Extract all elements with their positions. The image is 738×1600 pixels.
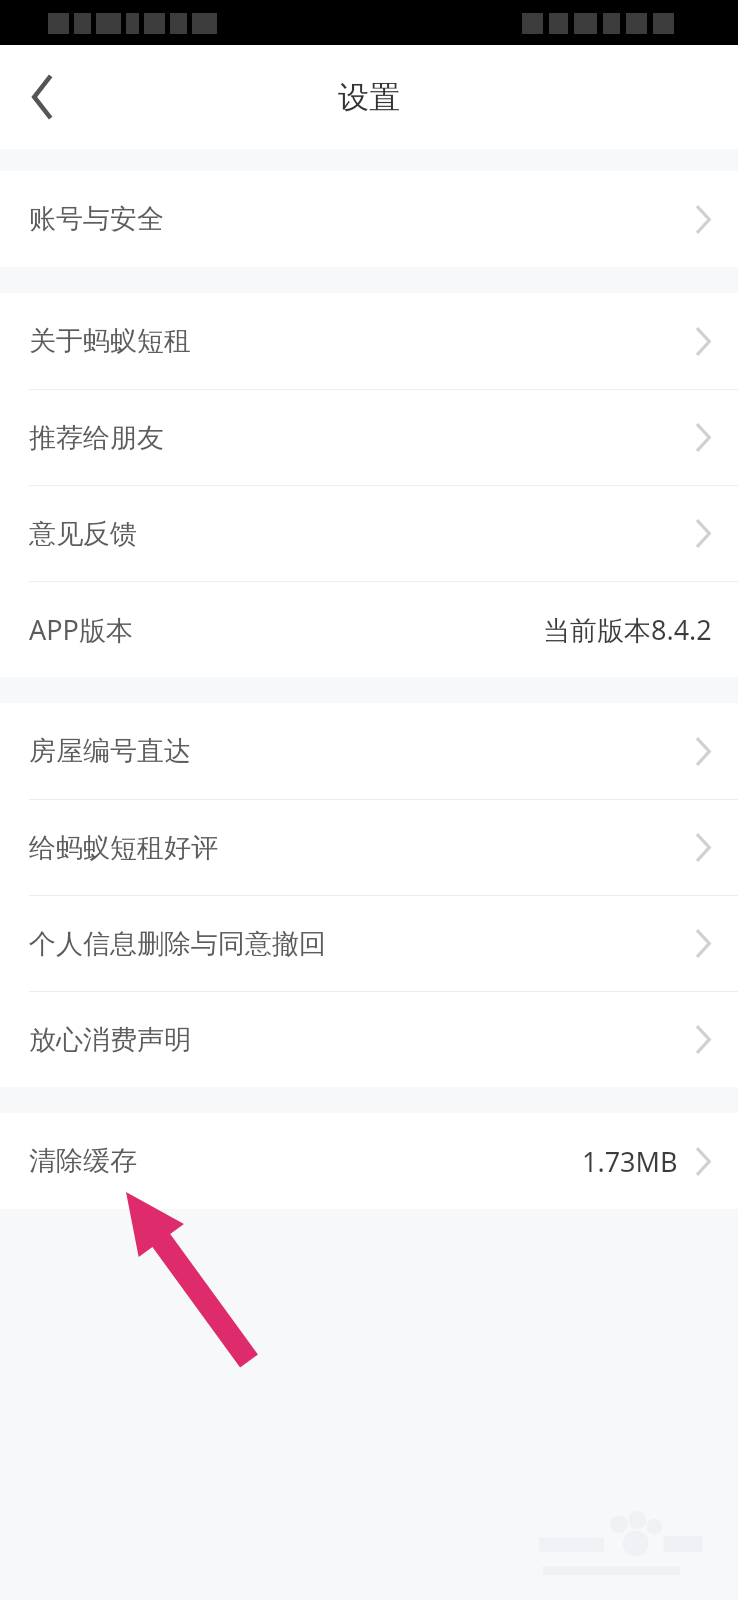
staticText: 账号与安全: [29, 202, 164, 236]
staticText: 个人信息删除与同意撤回: [29, 927, 326, 961]
staticText: 关于蚂蚁短租: [29, 324, 191, 358]
button[interactable]: 给蚂蚁短租好评: [0, 800, 738, 895]
staticText: 意见反馈: [29, 517, 137, 551]
staticText: 推荐给朋友: [29, 421, 164, 455]
button[interactable]: 房屋编号直达: [0, 703, 738, 799]
button[interactable]: APP版本: [0, 582, 738, 677]
button[interactable]: 放心消费声明: [0, 992, 738, 1087]
button[interactable]: 意见反馈: [0, 486, 738, 581]
staticText: 放心消费声明: [29, 1023, 191, 1057]
button[interactable]: 推荐给朋友: [0, 390, 738, 485]
staticText: 清除缓存: [29, 1144, 137, 1178]
button[interactable]: 个人信息删除与同意撤回: [0, 896, 738, 991]
staticText: 1.73MB: [582, 1143, 678, 1180]
staticText: 当前版本8.4.2: [543, 611, 712, 648]
staticText: 给蚂蚁短租好评: [29, 831, 218, 865]
button[interactable]: Back: [0, 55, 84, 139]
button[interactable]: 清除缓存: [0, 1113, 738, 1209]
button[interactable]: 账号与安全: [0, 171, 738, 267]
staticText: APP版本: [29, 611, 133, 648]
staticText: 房屋编号直达: [29, 734, 191, 768]
button[interactable]: 关于蚂蚁短租: [0, 293, 738, 389]
staticText: 设置: [338, 78, 400, 117]
